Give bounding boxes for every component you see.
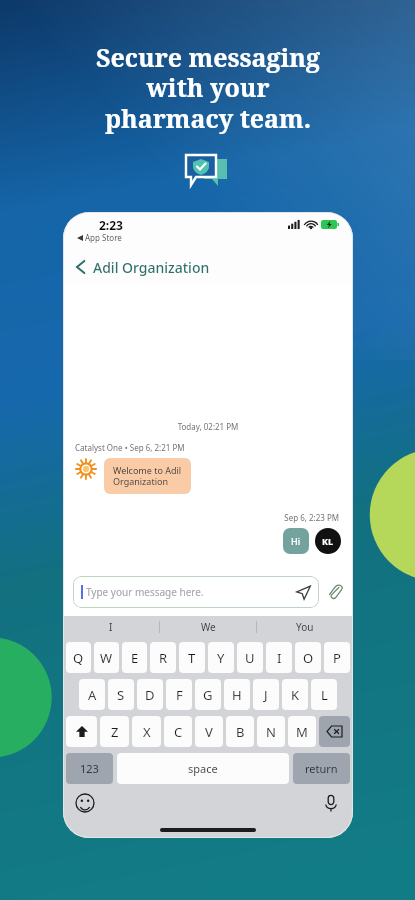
staticText: R — [159, 649, 168, 667]
staticText: F — [176, 686, 183, 704]
button[interactable]: D — [137, 679, 163, 710]
staticText: Today, 02:21 PM — [63, 421, 353, 432]
button[interactable]: L — [311, 679, 337, 710]
staticText: H — [232, 686, 242, 704]
staticText: KL — [322, 535, 334, 547]
button[interactable]: You — [257, 616, 353, 638]
button[interactable]: H — [224, 679, 250, 710]
button[interactable]: O — [295, 642, 321, 673]
button[interactable]: A — [79, 679, 105, 710]
button[interactable]: X — [132, 716, 161, 747]
button[interactable]: T — [179, 642, 205, 673]
button[interactable]: J — [253, 679, 279, 710]
button[interactable]: S — [108, 679, 134, 710]
staticText: C — [174, 723, 183, 741]
button[interactable]: I — [266, 642, 292, 673]
staticText: We — [201, 620, 216, 634]
staticText: P — [333, 649, 341, 667]
button[interactable]: Attach file — [327, 584, 343, 600]
button[interactable]: Q — [66, 642, 91, 673]
staticText: W — [100, 649, 113, 667]
staticText: J — [264, 686, 268, 704]
button[interactable]: P — [324, 642, 350, 673]
staticText: Adil Organization — [93, 258, 210, 277]
other: Back — [75, 259, 86, 275]
staticText: M — [296, 723, 308, 741]
staticText: X — [143, 723, 151, 741]
staticText: Hi — [291, 535, 301, 547]
staticText: L — [321, 686, 328, 704]
staticText: G — [203, 686, 213, 704]
button[interactable]: U — [237, 642, 263, 673]
staticText: Type your message here. — [86, 585, 204, 599]
staticText: V — [205, 723, 213, 741]
staticText: I — [277, 649, 282, 667]
button[interactable]: Z — [100, 716, 129, 747]
staticText: Q — [73, 649, 84, 667]
button[interactable]: Dictate — [321, 793, 341, 813]
button[interactable]: Send — [296, 585, 311, 600]
staticText: 123 — [80, 761, 99, 776]
staticText: Z — [111, 723, 119, 741]
button[interactable]: R — [150, 642, 176, 673]
button[interactable]: Emoji — [75, 793, 95, 813]
button[interactable]: Type your message here. — [73, 576, 319, 608]
staticText: S — [117, 686, 125, 704]
staticText: space — [188, 761, 218, 776]
staticText: K — [291, 686, 300, 704]
button[interactable]: We — [160, 616, 256, 638]
button[interactable]: space — [117, 753, 289, 784]
staticText: B — [236, 723, 245, 741]
staticText: Welcome to Adil Organization — [113, 464, 182, 488]
button[interactable]: Hi — [283, 528, 309, 554]
button[interactable]: E — [122, 642, 147, 673]
button[interactable]: F — [166, 679, 192, 710]
staticText: D — [145, 686, 155, 704]
button[interactable]: I — [63, 616, 159, 638]
button[interactable]: B — [226, 716, 254, 747]
button[interactable]: K — [282, 679, 308, 710]
staticText: O — [303, 649, 314, 667]
staticText: 2:23 — [99, 217, 123, 233]
staticText: I — [109, 620, 113, 634]
button[interactable]: V — [195, 716, 223, 747]
button[interactable]: Y — [208, 642, 234, 673]
staticText: T — [188, 649, 196, 667]
button[interactable]: Backspace — [319, 716, 350, 747]
staticText: You — [296, 620, 314, 634]
button[interactable]: C — [164, 716, 192, 747]
staticText: return — [305, 761, 338, 776]
button[interactable]: G — [195, 679, 221, 710]
staticText: U — [245, 649, 255, 667]
staticText: E — [131, 649, 139, 667]
staticText: Secure messaging with your pharmacy team… — [96, 40, 320, 136]
button[interactable]: N — [257, 716, 285, 747]
staticText: Y — [217, 649, 225, 667]
staticText: Catalyst One • Sep 6, 2:21 PM — [75, 442, 185, 453]
staticText: App Store — [85, 232, 122, 243]
button[interactable]: Welcome to Adil Organization — [104, 458, 191, 494]
button[interactable]: 123 — [66, 753, 113, 784]
button[interactable]: Shift — [66, 716, 97, 747]
button[interactable]: W — [94, 642, 119, 673]
staticText: Sep 6, 2:23 PM — [63, 512, 339, 523]
button[interactable]: return — [293, 753, 350, 784]
staticText: N — [266, 723, 276, 741]
button[interactable]: M — [288, 716, 316, 747]
button[interactable]: Back — [63, 250, 353, 284]
staticText: A — [88, 686, 97, 704]
